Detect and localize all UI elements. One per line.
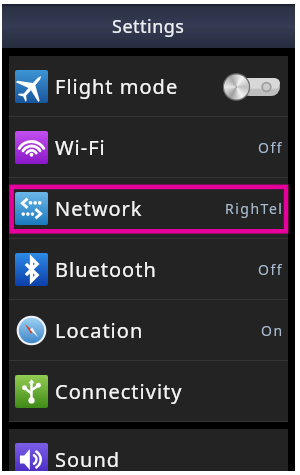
staticText: Sound bbox=[55, 446, 121, 471]
button[interactable]: Flight mode bbox=[9, 56, 288, 117]
staticText: Connectivity bbox=[55, 378, 183, 405]
staticText: On bbox=[261, 321, 284, 340]
button[interactable]: Connectivity bbox=[9, 361, 288, 422]
staticText: Off bbox=[258, 138, 284, 157]
button[interactable]: Sound bbox=[9, 429, 288, 471]
button[interactable]: Network bbox=[9, 178, 288, 239]
staticText: Wi-Fi bbox=[55, 134, 106, 161]
staticText: Network bbox=[55, 195, 143, 222]
button[interactable]: Bluetooth bbox=[9, 239, 288, 300]
staticText: Off bbox=[258, 260, 284, 279]
staticText: Flight mode bbox=[55, 73, 179, 100]
staticText: Settings bbox=[112, 14, 185, 39]
staticText: Bluetooth bbox=[55, 256, 157, 283]
staticText: Location bbox=[55, 317, 144, 344]
button[interactable]: Wi-Fi bbox=[9, 117, 288, 178]
button[interactable]: Flight mode toggle bbox=[223, 74, 280, 100]
staticText: RighTel bbox=[225, 199, 284, 218]
button[interactable]: Location bbox=[9, 300, 288, 361]
